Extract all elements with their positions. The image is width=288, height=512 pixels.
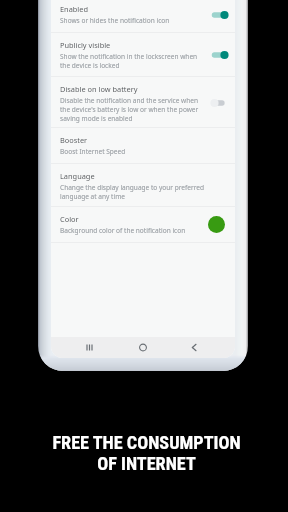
button[interactable]: Enabled [51, 0, 235, 33]
staticText: Publicly visible [60, 40, 111, 50]
staticText: Disable on low battery [60, 84, 138, 94]
staticText: saving mode is enabled [60, 114, 133, 123]
staticText: Background color of the notification ico… [60, 226, 186, 235]
staticText: Language [60, 171, 95, 181]
button[interactable]: Booster [51, 128, 235, 164]
button[interactable]: Publicly visible [51, 33, 235, 77]
button[interactable]: Disable on low battery [51, 77, 235, 128]
other: Navigation bar [51, 337, 235, 358]
staticText: OF INTERNET [97, 453, 196, 474]
button[interactable]: Switch on [210, 8, 229, 22]
staticText: language at any time [60, 192, 125, 201]
staticText: Change the display language to your pref… [60, 183, 204, 192]
staticText: Color [60, 214, 79, 224]
staticText: Shows or hides the notification icon [60, 16, 170, 25]
staticText: Disable the notification and the service… [60, 96, 199, 105]
button[interactable]: Switch on [210, 48, 229, 62]
button[interactable]: Pick color [208, 216, 225, 233]
staticText: the device's battery is low or when the … [60, 105, 199, 114]
button[interactable]: Language [51, 164, 235, 207]
button[interactable]: Switch off [210, 96, 229, 110]
staticText: Booster [60, 135, 88, 145]
staticText: Show the notification in the lockscreen … [60, 52, 198, 61]
button[interactable]: Color [51, 207, 235, 243]
staticText: Boost Internet Speed [60, 147, 126, 156]
staticText: Enabled [60, 4, 88, 14]
staticText: FREE THE CONSUMPTION [52, 432, 241, 453]
staticText: the device is locked [60, 61, 120, 70]
